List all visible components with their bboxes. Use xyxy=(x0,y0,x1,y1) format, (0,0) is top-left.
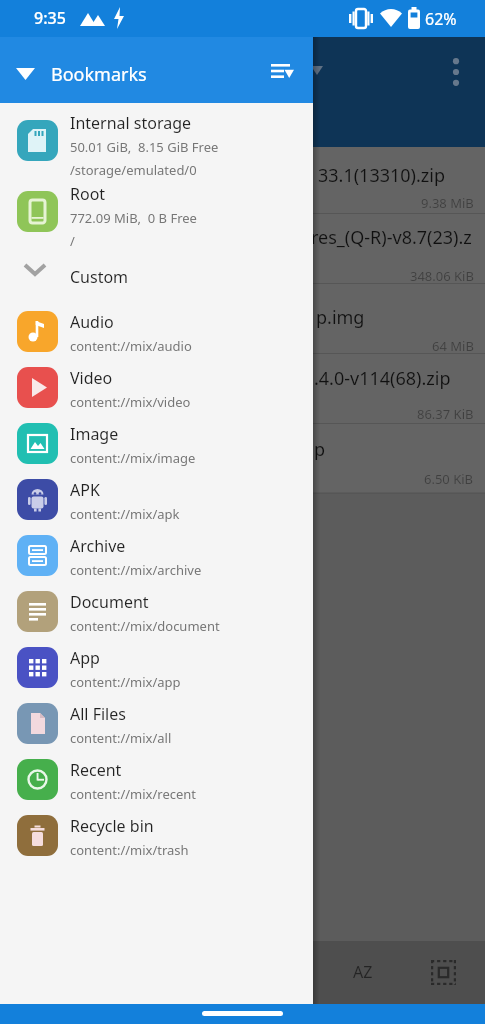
staticText: 348.06 KiB xyxy=(410,267,474,285)
button[interactable]: Internal storage xyxy=(0,104,313,179)
button[interactable] xyxy=(262,52,302,90)
staticText: / xyxy=(70,232,75,250)
staticText: /storage/emulated/0 xyxy=(70,161,197,179)
staticText: 62% xyxy=(425,8,457,30)
staticText: 9.38 MiB xyxy=(421,194,474,212)
staticText: Root xyxy=(70,183,106,205)
button[interactable]: Document xyxy=(0,582,313,638)
staticText: Custom xyxy=(70,266,129,288)
staticText: content://mix/recent xyxy=(70,785,197,803)
staticText: content://mix/trash xyxy=(70,841,189,859)
staticText: 86.37 KiB xyxy=(417,405,474,423)
staticText: 64 MiB xyxy=(432,337,474,355)
staticText: 772.09 MiB, 0 B Free xyxy=(70,209,197,227)
staticText: content://mix/apk xyxy=(70,505,180,523)
staticText: content://mix/audio xyxy=(70,337,192,355)
staticText: Document xyxy=(70,591,149,613)
button[interactable]: App xyxy=(0,638,313,694)
button[interactable]: Custom xyxy=(0,254,313,296)
button[interactable]: AZ xyxy=(340,950,386,994)
staticText: App xyxy=(70,647,100,669)
staticText: Recycle bin xyxy=(70,815,154,837)
button[interactable]: Recycle bin xyxy=(0,806,313,862)
staticText: Archive xyxy=(70,535,126,557)
staticText: APK xyxy=(70,479,100,501)
staticText: p xyxy=(314,437,326,462)
staticText: AZ xyxy=(353,961,373,983)
staticText: content://mix/video xyxy=(70,393,191,411)
staticText: res_(Q-R)-v8.7(23).z xyxy=(311,225,472,250)
staticText: content://mix/app xyxy=(70,673,181,691)
button[interactable]: All Files xyxy=(0,694,313,750)
button[interactable] xyxy=(420,950,466,994)
staticText: Bookmarks xyxy=(51,62,147,87)
staticText: Video xyxy=(70,367,113,389)
staticText: content://mix/all xyxy=(70,729,172,747)
staticText: Internal storage xyxy=(70,112,192,134)
staticText: 9:35 xyxy=(34,7,66,29)
button[interactable]: Root xyxy=(0,179,313,254)
button[interactable]: Image xyxy=(0,414,313,470)
button[interactable]: Archive xyxy=(0,526,313,582)
staticText: 6.50 KiB xyxy=(424,470,474,488)
button[interactable]: Video xyxy=(0,358,313,414)
button[interactable] xyxy=(16,68,35,80)
staticText: 50.01 GiB, 8.15 GiB Free xyxy=(70,138,219,156)
staticText: Recent xyxy=(70,759,122,781)
staticText: Audio xyxy=(70,311,114,333)
staticText: Image xyxy=(70,423,119,445)
staticText: p.img xyxy=(316,305,365,330)
staticText: .4.0-v114(68).zip xyxy=(314,366,451,391)
staticText: content://mix/image xyxy=(70,449,196,467)
button[interactable]: Recent xyxy=(0,750,313,806)
staticText: content://mix/archive xyxy=(70,561,202,579)
staticText: 33.1(13310).zip xyxy=(318,163,445,188)
staticText: content://mix/document xyxy=(70,617,220,635)
button[interactable]: Audio xyxy=(0,302,313,358)
button[interactable]: APK xyxy=(0,470,313,526)
staticText: All Files xyxy=(70,703,126,725)
